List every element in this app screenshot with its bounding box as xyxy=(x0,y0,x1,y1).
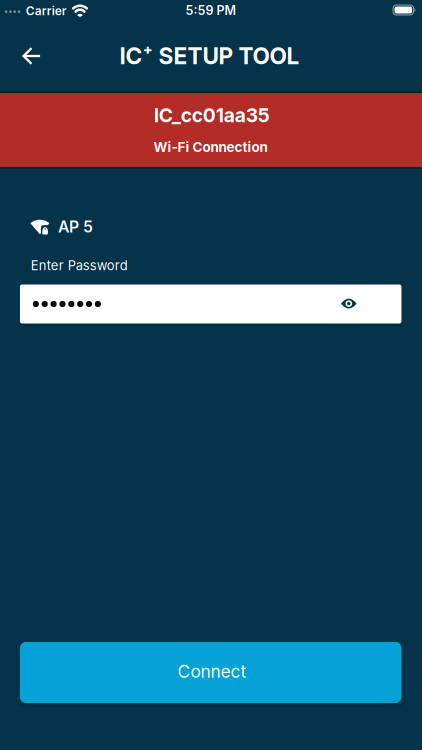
staticText: Carrier xyxy=(26,3,67,18)
staticText: 5:59 PM xyxy=(185,3,236,18)
button[interactable]: Connect xyxy=(20,642,401,703)
staticText: AP 5 xyxy=(58,217,93,236)
staticText: Connect xyxy=(177,661,246,682)
staticText: Enter Password xyxy=(31,258,128,273)
staticText: IC_cc01aa35 xyxy=(154,104,270,127)
staticText: IC⁺ SETUP TOOL xyxy=(119,42,299,70)
button[interactable]: Password xyxy=(20,284,401,323)
button[interactable]: Show Password xyxy=(329,284,369,323)
staticText: Wi-Fi Connection xyxy=(153,139,267,155)
button[interactable]: Back xyxy=(9,34,53,78)
